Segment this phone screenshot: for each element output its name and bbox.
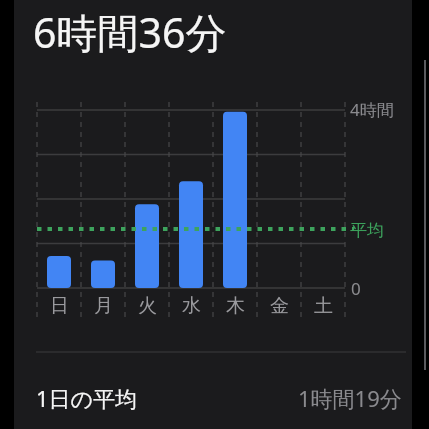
button[interactable]: 1週間の睡眠時間グラフ — [14, 92, 412, 310]
button[interactable]: 6時間36分 — [33, 4, 227, 60]
staticText: 1時間19分 — [298, 383, 402, 413]
staticText: 土 — [314, 294, 333, 318]
staticText: 4時間 — [350, 98, 394, 121]
staticText: 火 — [138, 294, 157, 318]
staticText: 水 — [182, 294, 201, 318]
staticText: 月 — [94, 294, 113, 318]
staticText: 木 — [226, 294, 245, 318]
staticText: 平均 — [350, 220, 384, 241]
button[interactable]: 1日の平均 — [14, 374, 412, 422]
staticText: 日 — [50, 294, 69, 318]
staticText: 0 — [351, 277, 361, 300]
staticText: 金 — [270, 294, 289, 318]
staticText: 1日の平均 — [36, 383, 138, 413]
